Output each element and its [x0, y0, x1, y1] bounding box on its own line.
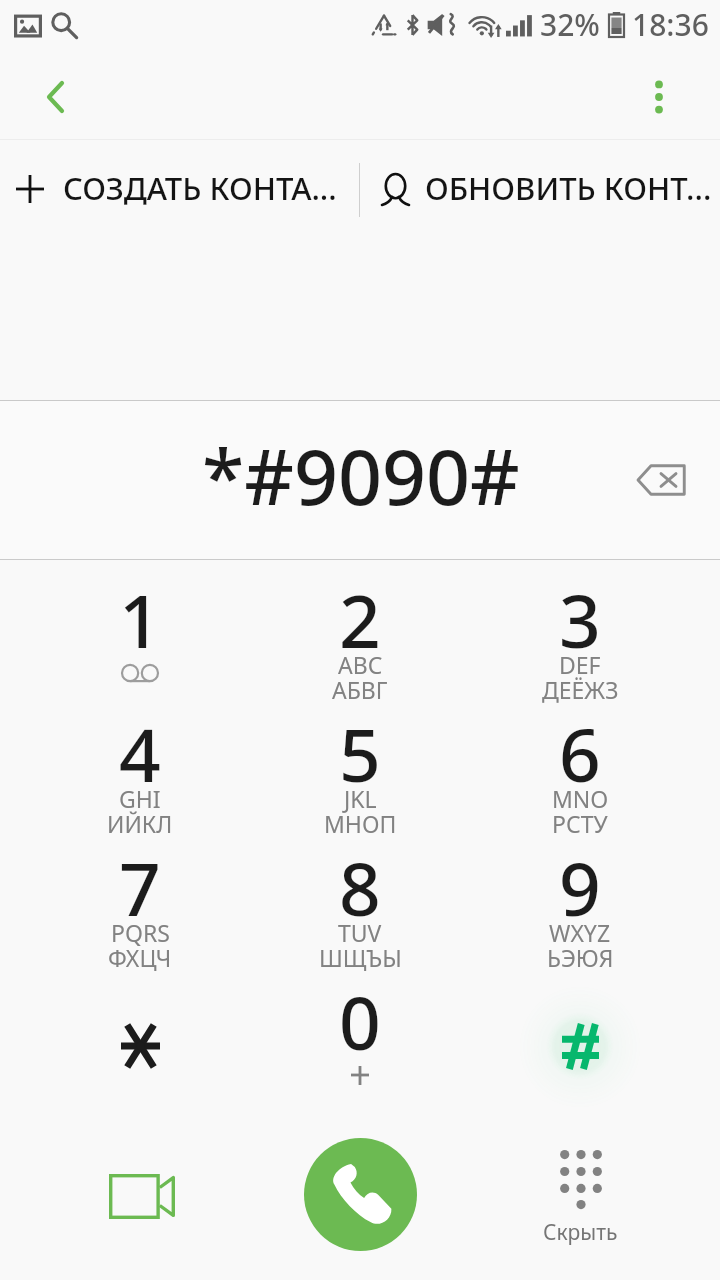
staticText: ОБНОВИТЬ КОНТ... — [425, 167, 712, 209]
button[interactable]: Call — [304, 1138, 417, 1251]
staticText: Скрыть — [543, 1218, 618, 1247]
staticText: 8 — [339, 838, 381, 937]
button[interactable]: Video call — [97, 1153, 183, 1239]
button[interactable]: 0 — [250, 962, 470, 1096]
staticText: 5 — [339, 704, 381, 803]
staticText: MNO — [552, 783, 609, 814]
staticText: TUV — [338, 917, 382, 948]
staticText: 4 — [119, 704, 161, 803]
button[interactable]: 1 — [30, 560, 250, 694]
button[interactable]: More options — [631, 69, 687, 125]
button[interactable]: 8 — [250, 828, 470, 962]
staticText: СОЗДАТЬ КОНТА... — [63, 167, 337, 209]
staticText: DEF — [559, 649, 601, 680]
staticText: ФХЦЧ — [108, 942, 172, 973]
staticText: 1 — [119, 570, 161, 669]
button[interactable]: ОБНОВИТЬ КОНТ... — [360, 140, 720, 240]
staticText: ИЙКЛ — [107, 808, 173, 839]
button[interactable]: Star — [30, 962, 250, 1096]
staticText: 9 — [559, 838, 601, 937]
staticText: 32% — [540, 4, 600, 45]
staticText: 7 — [119, 838, 161, 937]
staticText: 3 — [559, 570, 601, 669]
staticText: 6 — [559, 704, 601, 803]
button[interactable]: 9 — [470, 828, 690, 962]
button[interactable]: Скрыть — [525, 1142, 636, 1253]
button[interactable]: СОЗДАТЬ КОНТА... — [0, 140, 359, 240]
staticText: ЬЭЮЯ — [547, 942, 614, 973]
staticText: ДЕЁЖЗ — [542, 674, 619, 705]
staticText: РСТУ — [552, 808, 608, 839]
button[interactable]: Backspace — [627, 446, 695, 514]
button[interactable]: 2 — [250, 560, 470, 694]
staticText: 18:36 — [632, 4, 709, 45]
staticText: 0 — [339, 972, 381, 1071]
staticText: ABC — [338, 649, 383, 680]
staticText: PQRS — [111, 917, 170, 948]
button[interactable]: 7 — [30, 828, 250, 962]
staticText: WXYZ — [549, 917, 611, 948]
staticText: *#9090# — [202, 423, 520, 528]
staticText: GHI — [119, 783, 161, 814]
button[interactable]: 3 — [470, 560, 690, 694]
button[interactable]: Back — [27, 69, 83, 125]
staticText: АБВГ — [332, 674, 388, 705]
button[interactable]: Pound — [470, 962, 690, 1096]
staticText: 2 — [339, 570, 381, 669]
button[interactable]: 6 — [470, 694, 690, 828]
staticText: ШЩЪЫ — [319, 942, 402, 973]
button[interactable]: 4 — [30, 694, 250, 828]
staticText: JKL — [344, 783, 377, 814]
button[interactable]: 5 — [250, 694, 470, 828]
staticText: МНОП — [324, 808, 397, 839]
